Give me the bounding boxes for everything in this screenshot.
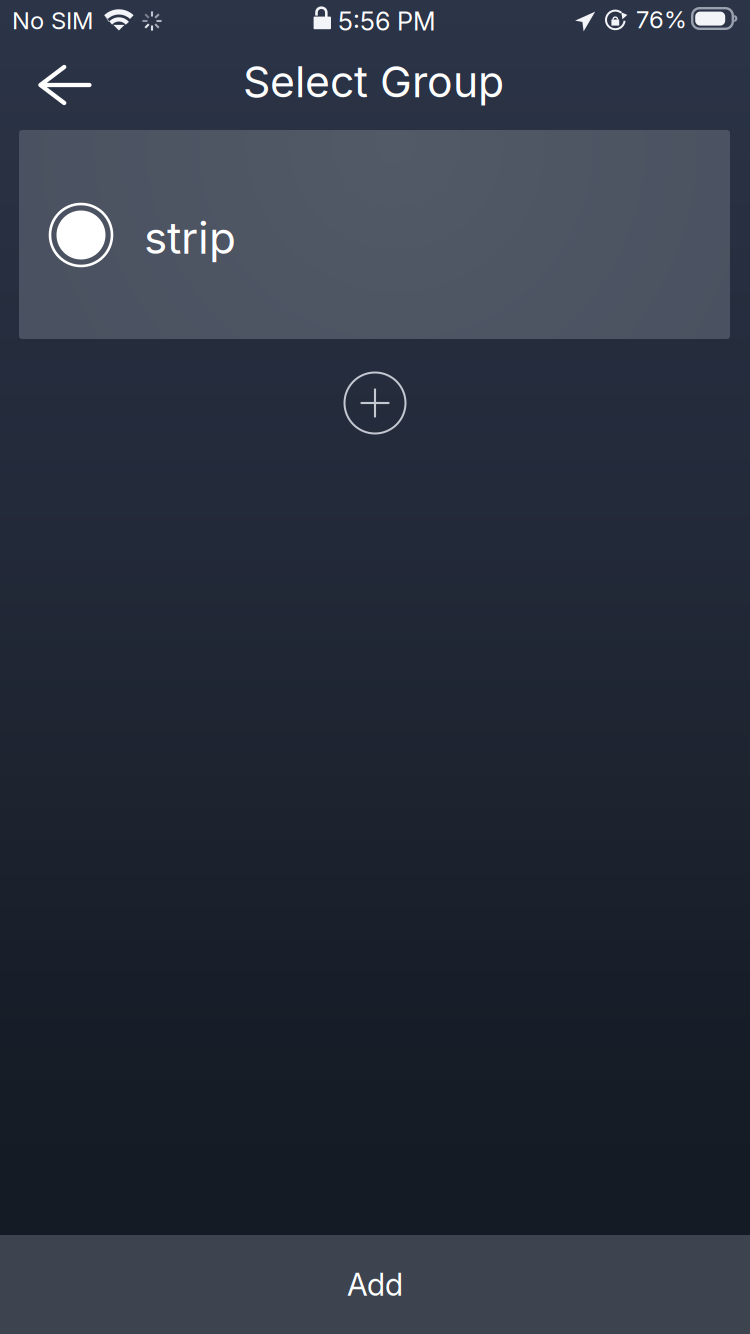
staticText: Add	[347, 1266, 403, 1303]
button[interactable]: strip	[19, 130, 730, 339]
staticText: 5:56 PM	[338, 6, 436, 37]
staticText: No SIM	[12, 6, 93, 35]
button[interactable]: Add group	[327, 355, 423, 451]
button[interactable]: Add	[0, 1235, 750, 1334]
staticText: Select Group	[243, 56, 504, 108]
staticText: strip	[144, 211, 236, 264]
staticText: 76%	[636, 5, 687, 34]
button[interactable]: Back	[26, 52, 104, 118]
